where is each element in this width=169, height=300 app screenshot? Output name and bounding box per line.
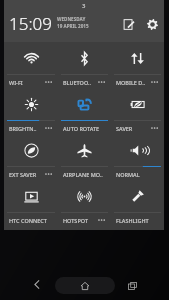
button[interactable]: BRIGHTN..: [4, 88, 58, 134]
button[interactable]: AUTO ROTATE: [58, 88, 111, 134]
button[interactable]: Home: [55, 277, 115, 294]
staticText: FLASHLIGHT: [116, 217, 149, 224]
staticText: AIRPLANE MO..: [63, 171, 103, 178]
staticText: 19 APRIL 2015: [57, 23, 89, 29]
button[interactable]: WI-FI: [4, 42, 58, 88]
staticText: BLUETOO..: [63, 79, 91, 86]
button[interactable]: NORMAL: [111, 134, 164, 180]
button[interactable]: SAVER: [111, 88, 164, 134]
staticText: HTC CONNECT: [9, 217, 47, 224]
button[interactable]: HOTSPOT: [58, 180, 111, 226]
button[interactable]: MOBILE D..: [111, 42, 164, 88]
button[interactable]: HTC CONNECT: [4, 180, 58, 226]
staticText: SAVER: [116, 125, 133, 132]
button[interactable]: BLUETOO..: [58, 42, 111, 88]
staticText: EXT SAVER: [9, 171, 37, 178]
button[interactable]: Back: [28, 275, 46, 293]
button[interactable]: FLASHLIGHT: [111, 180, 164, 226]
staticText: WEDNESDAY: [57, 16, 86, 22]
staticText: WI-FI: [9, 79, 23, 86]
button[interactable]: Settings: [143, 15, 161, 33]
button[interactable]: Edit: [119, 15, 137, 33]
staticText: HOTSPOT: [63, 217, 88, 224]
button[interactable]: Recents: [123, 277, 141, 295]
staticText: 15:09: [9, 12, 52, 35]
button[interactable]: AIRPLANE MO..: [58, 134, 111, 180]
staticText: NORMAL: [116, 171, 140, 178]
staticText: 3: [82, 2, 86, 10]
button[interactable]: EXT SAVER: [4, 134, 58, 180]
staticText: AUTO ROTATE: [63, 125, 100, 132]
staticText: BRIGHTN..: [9, 125, 37, 132]
staticText: MOBILE D..: [116, 79, 146, 86]
